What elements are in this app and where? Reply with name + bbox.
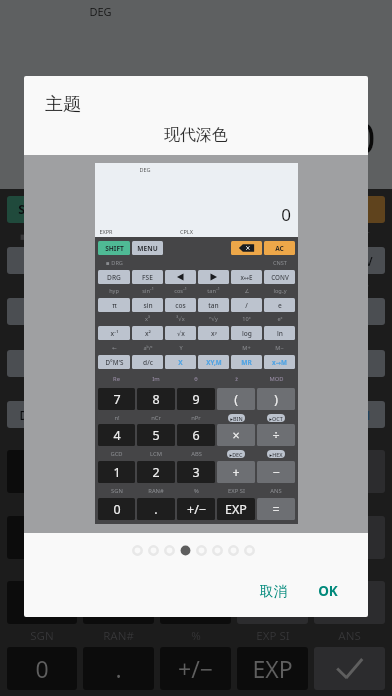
button[interactable]: Cursor left — [135, 247, 193, 274]
button[interactable]: × — [217, 424, 255, 446]
button[interactable]: Cursor left — [165, 270, 196, 284]
button[interactable]: ) — [314, 450, 385, 493]
button[interactable]: 7 — [7, 450, 77, 493]
button[interactable]: EXP — [237, 647, 308, 690]
button[interactable]: AC — [264, 241, 295, 255]
button[interactable]: CONV — [327, 247, 385, 274]
button[interactable]: 1 — [7, 581, 77, 624]
button[interactable]: D°M′S — [7, 401, 65, 428]
button[interactable]: 3 — [177, 461, 215, 483]
button[interactable]: x↔E — [231, 270, 262, 284]
button[interactable]: 5 — [137, 424, 175, 446]
button[interactable]: D°M′S — [98, 355, 130, 369]
button[interactable]: Backspace — [263, 196, 321, 223]
button[interactable]: 5 — [83, 516, 154, 559]
button[interactable]: √x — [165, 326, 196, 340]
button[interactable]: +/− — [160, 647, 231, 690]
button[interactable]: Backspace — [231, 241, 262, 255]
button[interactable]: 1 — [98, 461, 135, 483]
button[interactable]: 0 — [7, 647, 77, 690]
button[interactable]: MENU — [71, 196, 129, 223]
button[interactable]: 6 — [160, 516, 231, 559]
button[interactable]: x² — [71, 350, 129, 377]
button[interactable]: log — [231, 326, 262, 340]
button[interactable]: 8 — [83, 450, 154, 493]
button[interactable]: 7 — [98, 388, 135, 410]
button[interactable]: π — [7, 298, 65, 325]
button[interactable]: cos — [135, 298, 193, 325]
button[interactable]: tan — [198, 298, 229, 312]
button[interactable]: 6 — [177, 424, 215, 446]
button[interactable]: FSE — [71, 247, 129, 274]
button[interactable]: x↔E — [263, 247, 321, 274]
button[interactable]: DRG — [7, 247, 65, 274]
button[interactable]: π — [98, 298, 130, 312]
staticText: 1 — [35, 587, 49, 618]
button[interactable]: MR — [231, 355, 262, 369]
button[interactable]: Cursor right — [199, 247, 257, 274]
button[interactable]: − — [314, 581, 385, 624]
button[interactable]: − — [257, 461, 295, 483]
button[interactable]: FSE — [132, 270, 163, 284]
button[interactable]: ÷ — [257, 424, 295, 446]
button[interactable]: 取消 — [252, 575, 295, 608]
button[interactable]: ÷ — [314, 516, 385, 559]
button[interactable]: 4 — [98, 424, 135, 446]
button[interactable]: MENU — [132, 241, 163, 255]
button[interactable]: Cursor right — [198, 270, 229, 284]
button[interactable]: ) — [257, 388, 295, 410]
button[interactable]: X — [135, 401, 193, 428]
button[interactable]: d/c — [132, 355, 163, 369]
button[interactable]: Equals — [314, 647, 385, 690]
button[interactable]: 2 — [137, 461, 175, 483]
button[interactable]: tan — [199, 298, 257, 325]
button[interactable]: × — [237, 516, 308, 559]
button[interactable]: XY,M — [198, 355, 229, 369]
button[interactable]: xʸ — [198, 326, 229, 340]
button[interactable]: x→M — [327, 401, 385, 428]
button[interactable]: + — [217, 461, 255, 483]
button[interactable]: = — [257, 498, 295, 520]
button[interactable]: ( — [217, 388, 255, 410]
button[interactable]: X — [165, 355, 196, 369]
button[interactable]: MR — [263, 401, 321, 428]
button[interactable]: x→M — [264, 355, 295, 369]
button[interactable]: xʸ — [199, 350, 257, 377]
button[interactable]: e — [264, 298, 295, 312]
button[interactable]: 0 — [98, 498, 135, 520]
button[interactable]: ( — [237, 450, 308, 493]
button[interactable]: √x — [135, 350, 193, 377]
button[interactable]: 8 — [137, 388, 175, 410]
button[interactable]: x⁻¹ — [98, 326, 130, 340]
button[interactable]: 4 — [7, 516, 77, 559]
button[interactable]: 3 — [160, 581, 231, 624]
button[interactable]: 9 — [160, 450, 231, 493]
button[interactable]: OK — [310, 574, 346, 608]
button[interactable]: sin — [132, 298, 163, 312]
button[interactable]: cos — [165, 298, 196, 312]
button[interactable]: SHIFT — [98, 241, 130, 255]
button[interactable]: DRG — [98, 270, 130, 284]
button[interactable]: EXP — [217, 498, 255, 520]
button[interactable]: d/c — [71, 401, 129, 428]
button[interactable]: CONV — [264, 270, 295, 284]
button[interactable]: . — [137, 498, 175, 520]
button[interactable]: AC — [327, 196, 385, 223]
button[interactable]: +/− — [177, 498, 215, 520]
button[interactable]: + — [237, 581, 308, 624]
button[interactable]: . — [83, 647, 154, 690]
button[interactable]: ln — [264, 326, 295, 340]
button[interactable]: ln — [327, 350, 385, 377]
button[interactable]: 9 — [177, 388, 215, 410]
button[interactable]: x² — [132, 326, 163, 340]
button[interactable]: SHIFT — [7, 196, 65, 223]
button[interactable]: x⁻¹ — [7, 350, 65, 377]
button[interactable]: 2 — [83, 581, 154, 624]
button[interactable]: log — [263, 350, 321, 377]
button[interactable]: e — [327, 298, 385, 325]
button[interactable]: sin — [71, 298, 129, 325]
staticText: / — [290, 303, 295, 320]
button[interactable]: / — [231, 298, 262, 312]
button[interactable]: XY,M — [199, 401, 257, 428]
button[interactable]: / — [263, 298, 321, 325]
